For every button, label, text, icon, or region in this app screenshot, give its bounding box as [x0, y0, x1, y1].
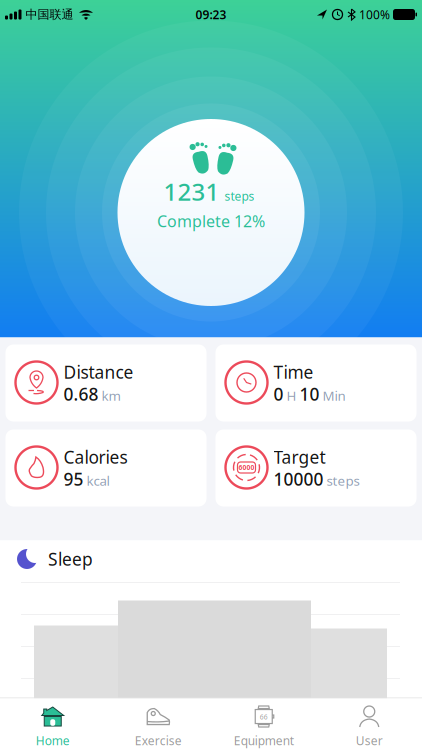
- staticText: Equipment: [234, 732, 294, 748]
- staticText: 10000: [273, 467, 323, 490]
- staticText: 95: [63, 467, 83, 490]
- staticText: 中国联通: [25, 7, 73, 22]
- staticText: Target: [273, 445, 325, 468]
- staticText: 66: [260, 713, 268, 721]
- button[interactable]: User: [316, 698, 422, 750]
- staticText: 09:23: [195, 6, 226, 22]
- staticText: km: [101, 387, 120, 404]
- staticText: Complete 12%: [157, 210, 265, 232]
- staticText: steps: [224, 188, 254, 204]
- staticText: Sleep: [48, 547, 93, 570]
- staticText: 1231: [163, 176, 219, 207]
- staticText: 0: [273, 382, 283, 405]
- button[interactable]: Distance: [5, 344, 206, 421]
- staticText: kcal: [86, 472, 109, 489]
- staticText: 6000: [238, 463, 254, 472]
- staticText: 100%: [359, 6, 390, 22]
- staticText: Time: [273, 360, 313, 383]
- staticText: Min: [322, 387, 345, 404]
- button[interactable]: Time: [215, 344, 416, 421]
- staticText: 10: [299, 382, 319, 405]
- button[interactable]: Exercise: [105, 698, 211, 750]
- staticText: User: [356, 732, 383, 748]
- button[interactable]: 6000: [215, 429, 416, 506]
- button[interactable]: Calories: [5, 429, 206, 506]
- staticText: steps: [326, 472, 359, 489]
- staticText: Distance: [63, 360, 133, 383]
- button[interactable]: Home: [0, 698, 105, 750]
- staticText: Home: [36, 732, 70, 748]
- staticText: 0.68: [63, 382, 98, 405]
- staticText: Calories: [63, 445, 127, 468]
- staticText: H: [286, 387, 296, 404]
- button[interactable]: 66: [211, 698, 316, 750]
- staticText: Exercise: [135, 732, 182, 748]
